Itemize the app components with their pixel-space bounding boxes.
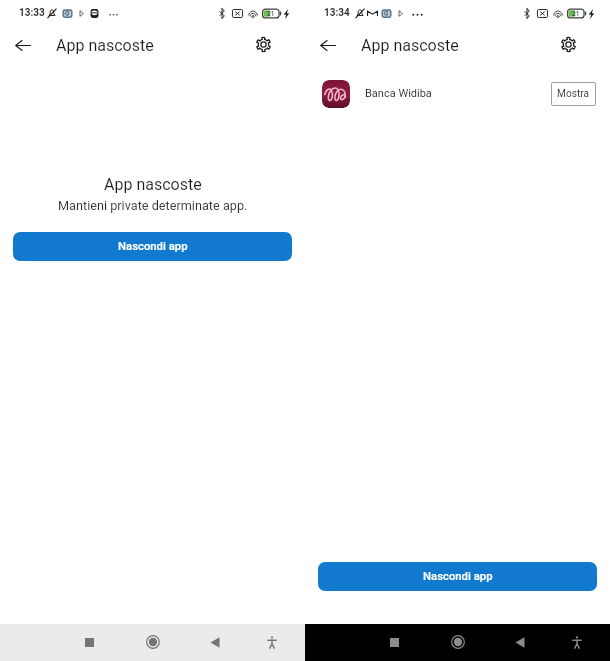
button[interactable]: Banca Widiba xyxy=(305,70,610,118)
button[interactable]: Settings xyxy=(249,30,278,59)
staticText: App nascoste xyxy=(361,36,459,55)
button[interactable]: Back xyxy=(505,627,535,657)
staticText: 21 xyxy=(267,10,275,18)
staticText: Nascondi app xyxy=(118,240,188,253)
staticText: Mantieni private determinate app. xyxy=(58,198,248,213)
button[interactable]: Accessibility xyxy=(562,627,592,657)
button[interactable]: Nascondi app xyxy=(318,562,597,591)
staticText: Nascondi app xyxy=(423,570,493,583)
staticText: 21 xyxy=(572,10,580,18)
button[interactable]: Recent apps xyxy=(379,627,409,657)
button[interactable]: Home xyxy=(443,627,473,657)
button[interactable]: Back xyxy=(8,30,38,60)
staticText: App nascoste xyxy=(104,175,202,194)
button[interactable]: Nascondi app xyxy=(13,232,292,261)
button[interactable]: Settings xyxy=(554,30,583,59)
button[interactable]: Back xyxy=(200,627,230,657)
button[interactable]: Back xyxy=(313,30,343,60)
staticText: Banca Widiba xyxy=(365,87,432,100)
staticText: 13:34 xyxy=(324,7,350,19)
button[interactable]: Accessibility xyxy=(257,627,287,657)
staticText: Mostra xyxy=(557,88,590,100)
button[interactable]: Recent apps xyxy=(74,627,104,657)
button[interactable]: Home xyxy=(138,627,168,657)
staticText: 13:33 xyxy=(19,7,45,19)
button[interactable]: Mostra xyxy=(551,82,596,106)
staticText: App nascoste xyxy=(56,36,154,55)
